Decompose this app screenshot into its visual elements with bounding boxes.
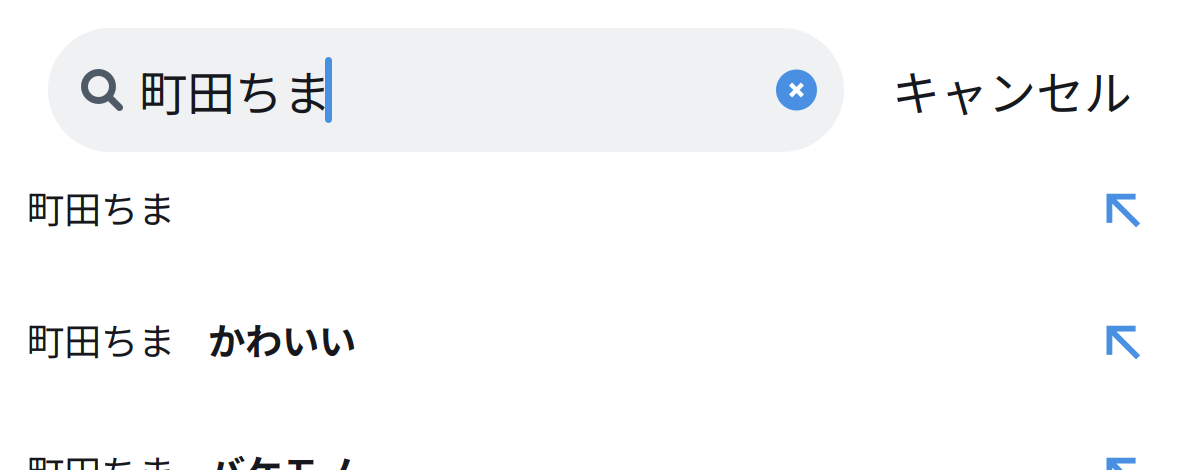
button[interactable]: キャンセル — [844, 55, 1179, 125]
staticText: 町田ちま — [139, 55, 331, 125]
button[interactable]: 町田ちま — [48, 28, 776, 152]
staticText: 町田ちま — [27, 444, 175, 470]
staticText: かわいい — [208, 312, 356, 366]
button[interactable]: 町田ちま — [0, 405, 1179, 470]
button[interactable]: Clear text — [776, 69, 844, 110]
staticText: バケモノ — [208, 444, 356, 470]
button[interactable]: 町田ちま — [0, 141, 1179, 273]
button[interactable]: 町田ちま — [0, 273, 1179, 405]
staticText: キャンセル — [892, 55, 1132, 125]
staticText: 町田ちま — [27, 312, 175, 366]
staticText: 町田ちま — [27, 180, 175, 234]
